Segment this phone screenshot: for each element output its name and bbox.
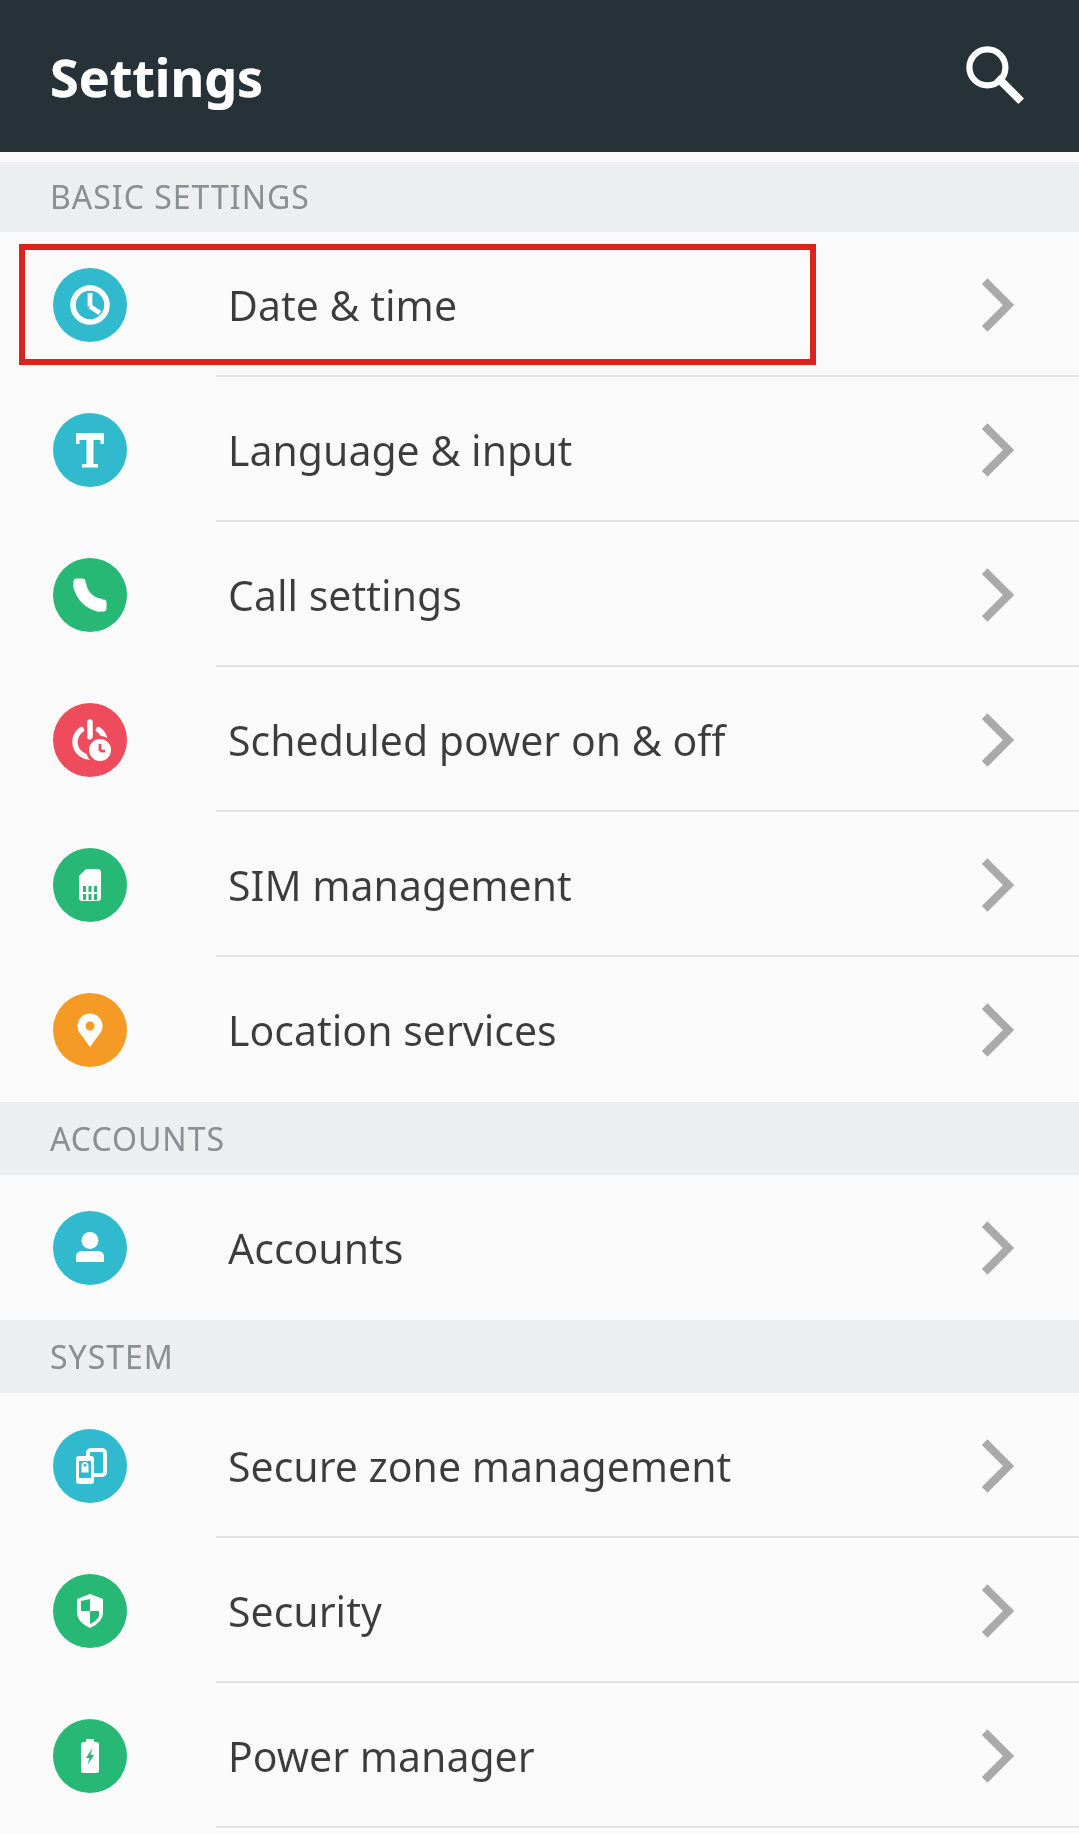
staticText: Location services: [228, 1002, 557, 1058]
button[interactable]: Language & input: [0, 377, 1079, 522]
staticText: Secure zone management: [228, 1438, 732, 1494]
button[interactable]: Secure zone management: [0, 1393, 1079, 1538]
staticText: ACCOUNTS: [50, 1117, 226, 1161]
staticText: BASIC SETTINGS: [50, 175, 310, 219]
staticText: Settings: [50, 41, 264, 112]
button[interactable]: SIM management: [0, 812, 1079, 957]
button[interactable]: Date & time: [0, 232, 1079, 377]
button[interactable]: Power manager: [0, 1683, 1079, 1828]
button[interactable]: [949, 31, 1039, 121]
staticText: SIM management: [228, 857, 572, 913]
staticText: Call settings: [228, 567, 462, 623]
staticText: SYSTEM: [50, 1335, 174, 1379]
staticText: Language & input: [228, 422, 573, 478]
staticText: Power manager: [228, 1728, 535, 1784]
button[interactable]: Call settings: [0, 522, 1079, 667]
button[interactable]: Location services: [0, 957, 1079, 1102]
button[interactable]: Scheduled power on & off: [0, 667, 1079, 812]
button[interactable]: Security: [0, 1538, 1079, 1683]
staticText: Scheduled power on & off: [228, 712, 726, 768]
staticText: Accounts: [228, 1220, 404, 1276]
staticText: Security: [228, 1583, 382, 1639]
staticText: Date & time: [228, 277, 458, 333]
button[interactable]: Accounts: [0, 1175, 1079, 1320]
